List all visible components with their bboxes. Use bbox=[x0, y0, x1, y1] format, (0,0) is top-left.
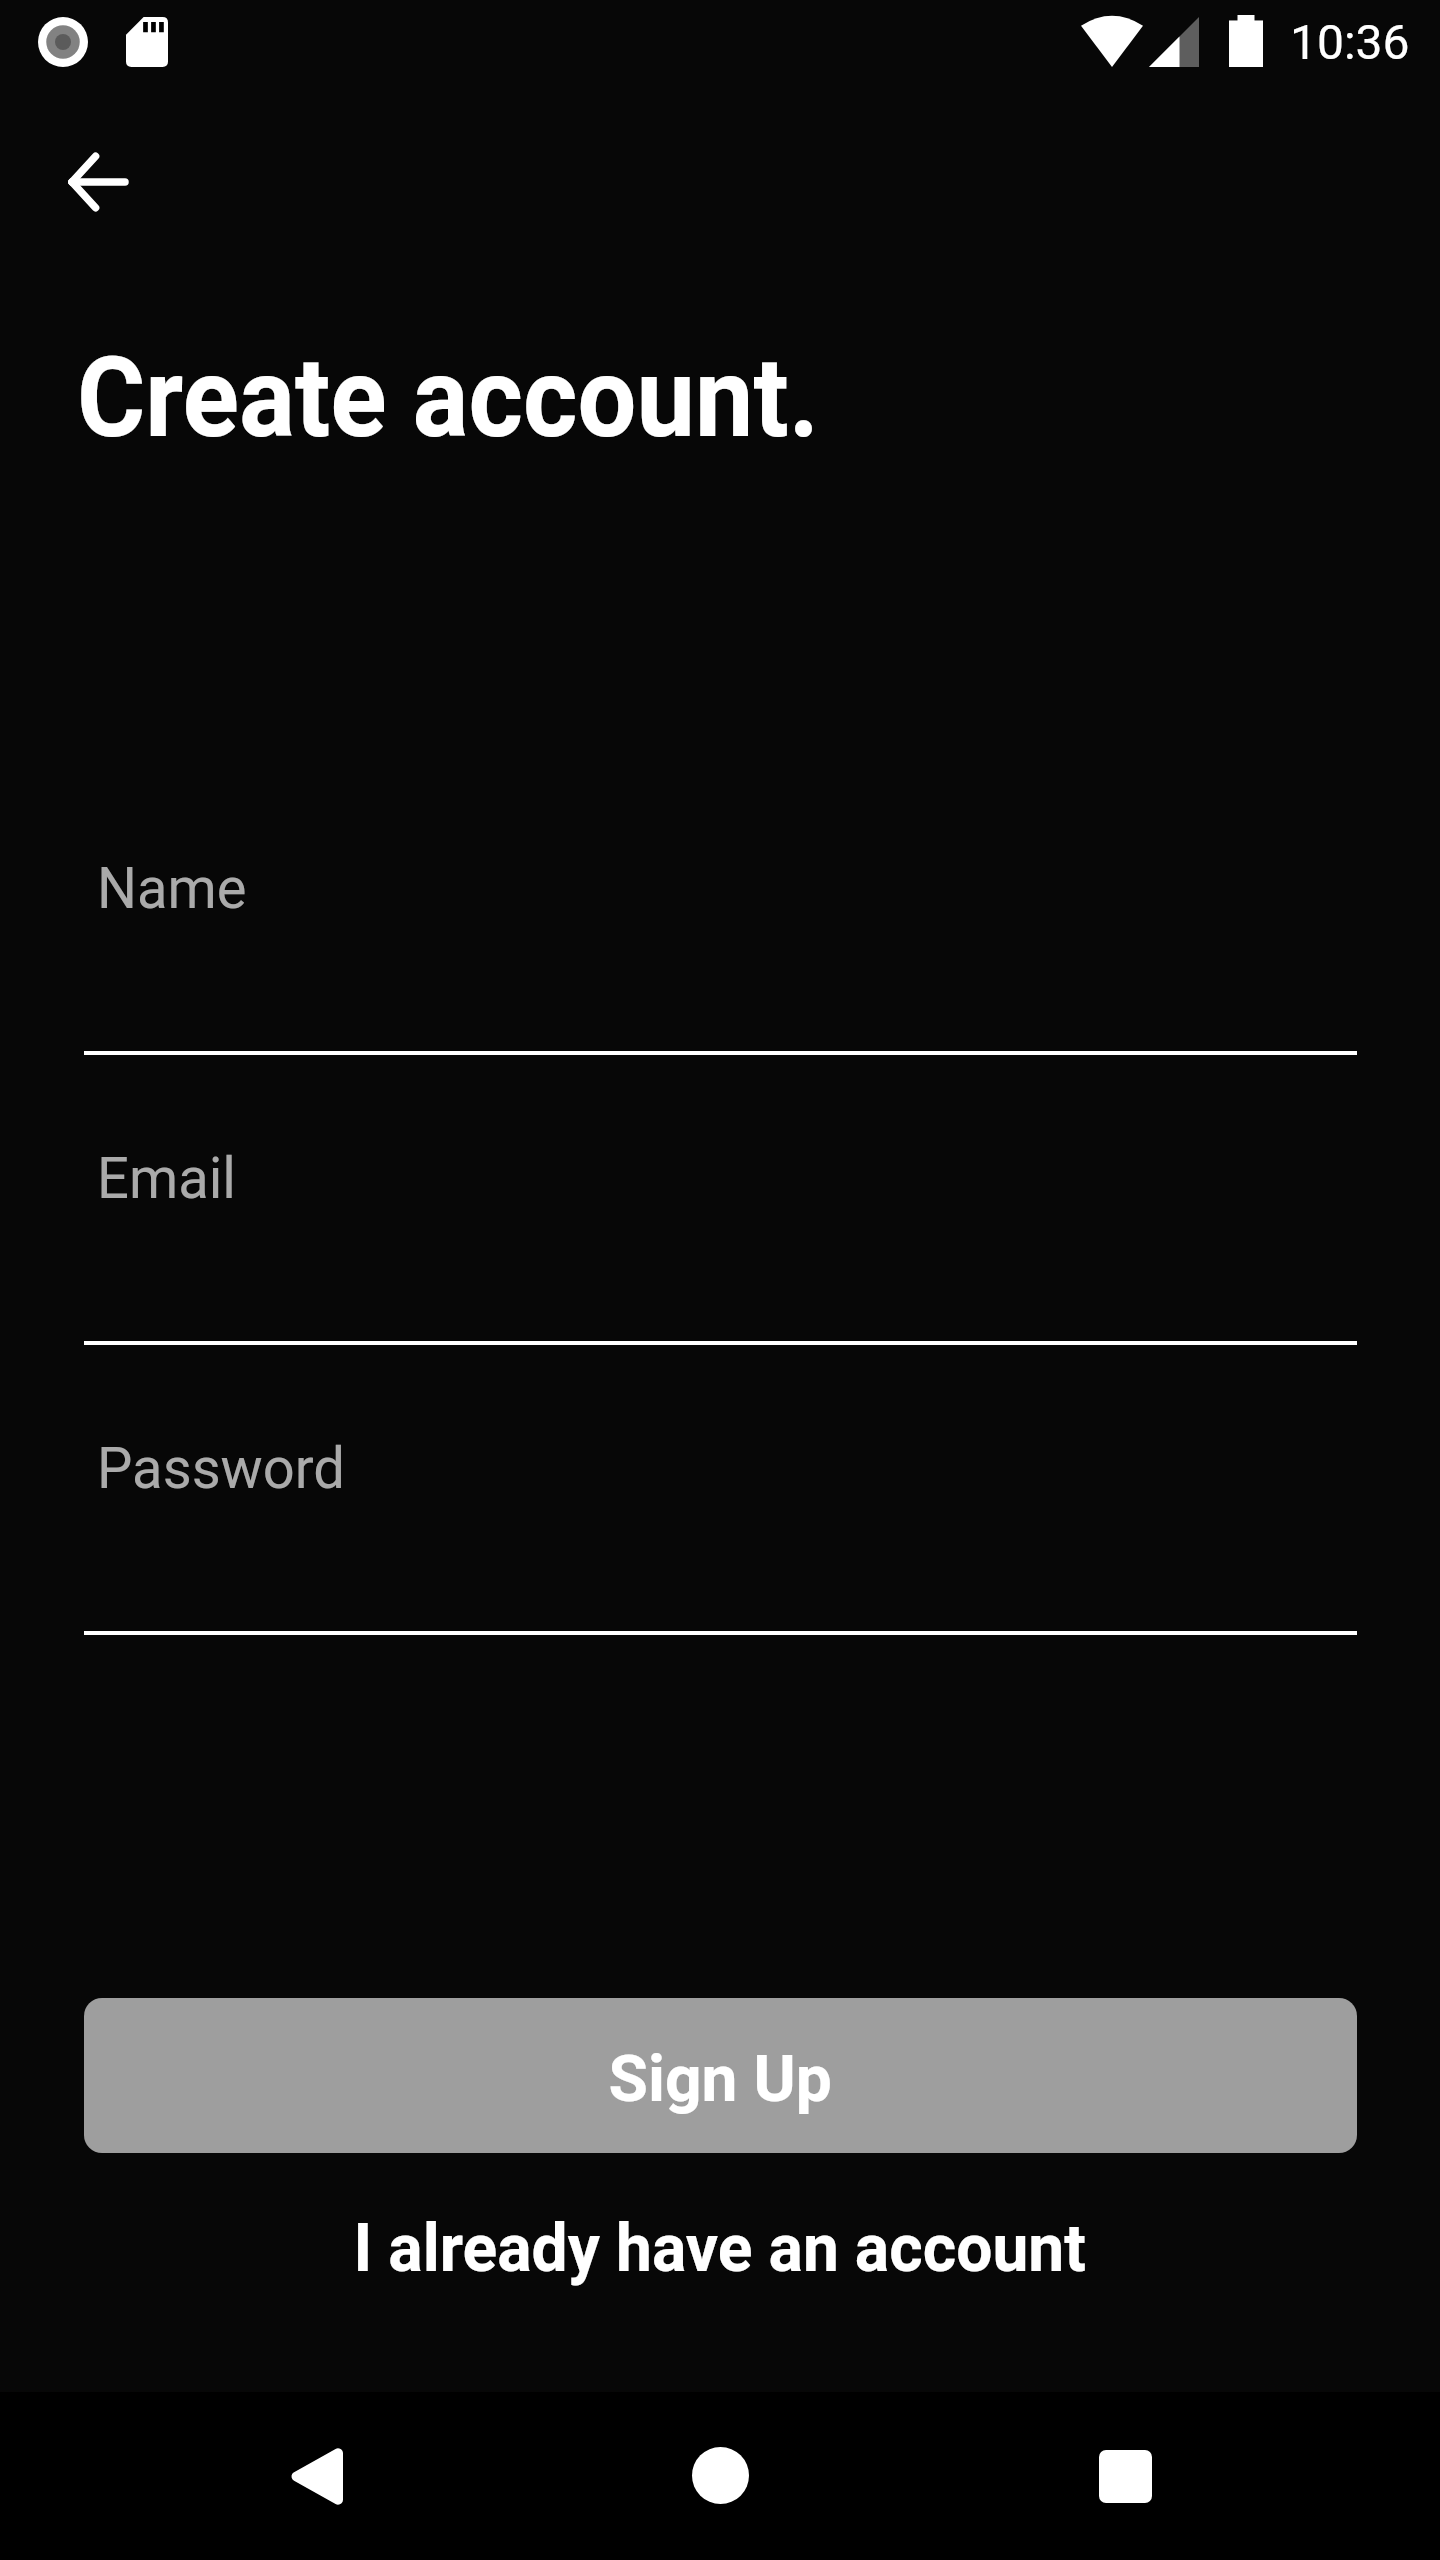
button[interactable]: Home bbox=[650, 2405, 790, 2545]
staticText: 10:36 bbox=[1290, 14, 1410, 70]
staticText: Password bbox=[97, 1434, 346, 1502]
other: Wi-Fi bbox=[1081, 16, 1143, 67]
button[interactable]: Navigate up bbox=[26, 110, 170, 254]
staticText: I already have an account bbox=[354, 2210, 1086, 2287]
button[interactable]: Email bbox=[84, 1115, 1357, 1345]
other: Mobile signal bbox=[1149, 17, 1199, 67]
button[interactable]: Recent apps bbox=[1055, 2406, 1195, 2546]
button[interactable]: Password bbox=[84, 1405, 1357, 1635]
other: Screen recording bbox=[38, 17, 88, 67]
staticText: Create account. bbox=[77, 332, 820, 463]
button[interactable]: I already have an account bbox=[0, 2193, 1440, 2303]
button[interactable]: Back bbox=[244, 2406, 384, 2546]
other: SD card bbox=[126, 17, 168, 67]
button[interactable]: Name bbox=[84, 825, 1357, 1055]
button[interactable]: Sign Up bbox=[84, 1998, 1357, 2153]
staticText: Name bbox=[97, 854, 247, 922]
staticText: Email bbox=[97, 1144, 236, 1212]
other: Battery bbox=[1229, 15, 1263, 67]
staticText: Sign Up bbox=[609, 2041, 832, 2117]
